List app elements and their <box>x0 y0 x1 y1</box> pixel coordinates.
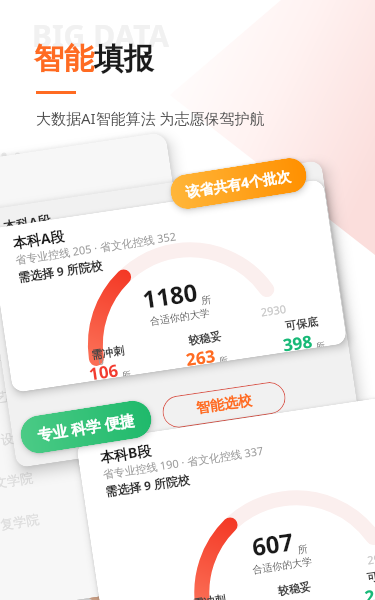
staticText: 修复学院 <box>0 511 40 534</box>
button[interactable]: 该省共有4个批次 <box>168 155 309 211</box>
staticText: 省专业控线 190 · 省文化控线 337 <box>144 460 307 498</box>
staticText: 较稳妥 <box>187 329 222 347</box>
staticText: 需冲刺 <box>90 343 125 362</box>
staticText: 所 <box>313 338 326 348</box>
staticText: 本科B段 <box>99 440 153 467</box>
staticText: 人文学院 <box>0 469 34 493</box>
staticText: 可保底 <box>366 566 375 585</box>
staticText: 本科B段 <box>141 457 195 484</box>
staticText: 本科A段 <box>2 210 52 235</box>
staticText: 该省共有4个批次 <box>184 166 293 201</box>
button[interactable]: 智能选校 <box>160 380 288 430</box>
staticText: 2930 <box>260 301 288 319</box>
staticText: 系设置 <box>0 346 2 368</box>
staticText: 398 <box>281 329 314 352</box>
staticText: 所 <box>294 541 309 557</box>
button[interactable]: 专业 科学 便捷 <box>18 398 154 456</box>
staticText: 需选择 9 所院校 <box>17 256 104 285</box>
staticText: 所 <box>197 292 212 308</box>
staticText: 607 <box>250 524 296 563</box>
staticText: 需选择 9 所院校 <box>146 488 233 516</box>
staticText: 实验艺术学院 <box>0 382 47 410</box>
staticText: 263 <box>184 344 217 367</box>
staticText: 本科A段 <box>11 226 66 252</box>
staticText: 省专业控线 190 · 省文化控线 337 <box>102 443 265 481</box>
staticText: BIG DATA <box>32 15 170 56</box>
staticText: 所 <box>216 353 229 363</box>
staticText: 所 <box>119 367 132 377</box>
staticText: 250 <box>363 581 375 600</box>
staticText: 需冲刺 <box>192 592 226 600</box>
staticText: 智能选校 <box>195 392 253 418</box>
staticText: 1180 <box>140 275 200 316</box>
staticText: 城市设计学院 <box>0 424 53 451</box>
staticText: 省专业控线 205 · 省文化控线 352 <box>5 214 153 249</box>
staticText: 0 <box>97 354 105 367</box>
staticText: 合适你的大学 <box>252 555 313 576</box>
staticText: 2930 <box>366 549 375 567</box>
staticText: 省专业控线 205 · 省文化控线 352 <box>14 228 178 267</box>
staticText: 专业 科学 便捷 <box>36 409 136 445</box>
staticText: 180 <box>274 594 307 600</box>
staticText: 可保底 <box>284 314 319 333</box>
staticText: 较稳妥 <box>277 579 312 598</box>
staticText: 智能 <box>34 40 94 78</box>
button[interactable]: 本科A段 <box>0 179 347 393</box>
staticText: 合适你的大学 <box>149 306 210 328</box>
staticText: 需选择 9 所院校 <box>104 471 191 499</box>
button[interactable]: 本科B段 <box>76 393 375 600</box>
staticText: 大数据AI智能算法 为志愿保驾护航 <box>36 108 265 128</box>
staticText: 填报 <box>94 40 154 78</box>
staticText: 106 <box>87 358 120 381</box>
